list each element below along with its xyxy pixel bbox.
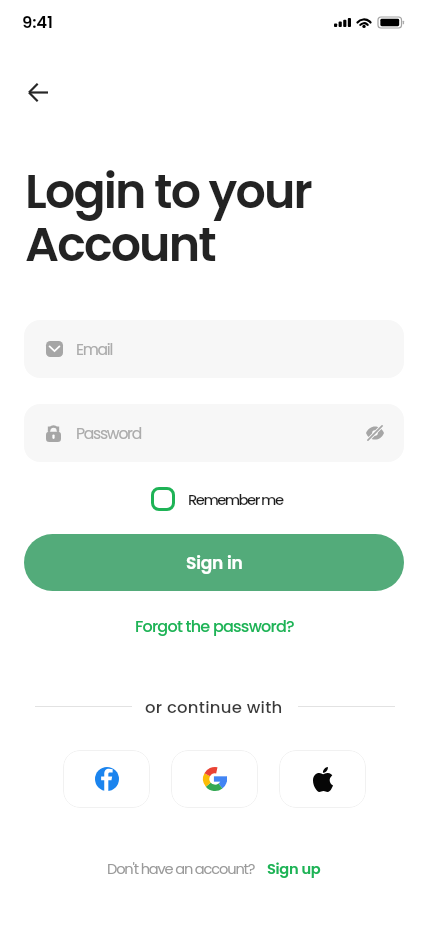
button[interactable]: Password: [24, 404, 404, 462]
button[interactable]: Forgot the password?: [125, 607, 304, 645]
staticText: Sign in: [186, 551, 243, 575]
button[interactable]: Sign up: [267, 859, 321, 879]
button[interactable]: Back: [14, 68, 62, 116]
button[interactable]: Show password: [362, 420, 388, 446]
staticText: Remember me: [188, 489, 283, 510]
staticText: Password: [76, 423, 141, 445]
button[interactable]: Remember me: [151, 487, 283, 511]
button[interactable]: Continue with Google: [171, 750, 258, 808]
staticText: Sign up: [267, 859, 321, 879]
button[interactable]: Email: [24, 320, 404, 378]
staticText: Email: [76, 339, 113, 361]
staticText: Don't have an account?: [107, 859, 255, 879]
button[interactable]: Sign in: [24, 534, 404, 591]
staticText: 9:41: [22, 11, 53, 34]
staticText: Forgot the password?: [135, 615, 294, 637]
button[interactable]: Continue with Facebook: [63, 750, 150, 808]
button[interactable]: Continue with Apple: [279, 750, 366, 808]
staticText: Login to your Account: [25, 158, 311, 277]
staticText: or continue with: [145, 696, 283, 719]
